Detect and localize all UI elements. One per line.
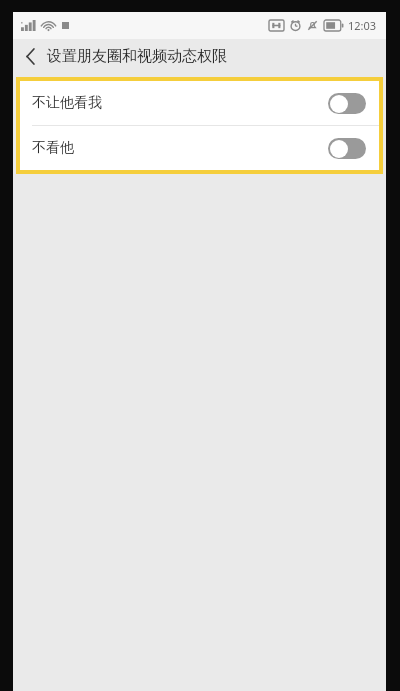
button[interactable]: 返回 [13, 39, 47, 73]
button[interactable]: 不看他 [20, 126, 379, 170]
staticText: 12:03 [348, 18, 377, 33]
staticText: 设置朋友圈和视频动态权限 [47, 47, 227, 66]
staticText: 不让他看我 [32, 94, 102, 112]
button[interactable]: 不让他看我 [20, 81, 379, 125]
button[interactable]: 开关 [328, 93, 366, 114]
staticText: 不看他 [32, 139, 74, 157]
button[interactable]: 开关 [328, 138, 366, 159]
